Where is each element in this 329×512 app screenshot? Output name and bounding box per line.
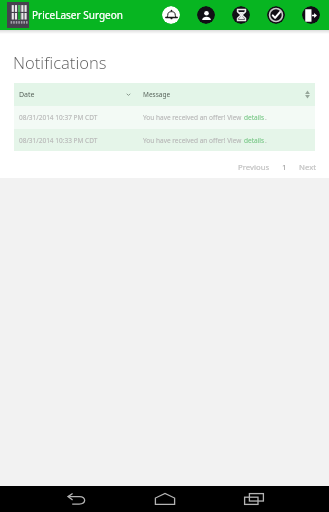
button[interactable]: Log out bbox=[302, 6, 320, 24]
staticText: details bbox=[244, 113, 265, 122]
staticText: 08/31/2014 10:37 PM CDT bbox=[19, 113, 98, 122]
button[interactable]: 08/31/2014 10:33 PM CDT bbox=[14, 129, 315, 151]
button[interactable]: 08/31/2014 10:37 PM CDT bbox=[14, 106, 315, 129]
button[interactable]: PriceLaser Surgeon bbox=[32, 8, 123, 22]
staticText: Date bbox=[19, 90, 35, 100]
button[interactable]: Date bbox=[14, 83, 137, 106]
button[interactable]: 1 bbox=[275, 162, 294, 173]
staticText: . bbox=[265, 136, 267, 145]
staticText: details bbox=[244, 136, 265, 145]
button[interactable]: Message bbox=[137, 83, 315, 106]
button[interactable]: Pending bbox=[232, 6, 250, 24]
staticText: . bbox=[265, 113, 267, 122]
button[interactable]: Previous bbox=[233, 162, 275, 173]
staticText: 08/31/2014 10:33 PM CDT bbox=[19, 136, 98, 145]
staticText: You have received an offer! View bbox=[143, 113, 244, 122]
button[interactable]: Home bbox=[143, 486, 187, 512]
staticText: Notifications bbox=[13, 51, 107, 73]
button[interactable]: Back bbox=[54, 486, 98, 512]
button[interactable]: Notifications bbox=[162, 6, 180, 24]
staticText: You have received an offer! View bbox=[143, 136, 244, 145]
button[interactable]: Next bbox=[294, 162, 322, 173]
button[interactable]: PriceLaser Surgeon home bbox=[7, 2, 29, 28]
button[interactable]: Recent apps bbox=[232, 486, 276, 512]
button[interactable]: Profile bbox=[197, 6, 215, 24]
staticText: Message bbox=[143, 90, 171, 99]
button[interactable]: Approved bbox=[267, 6, 285, 24]
